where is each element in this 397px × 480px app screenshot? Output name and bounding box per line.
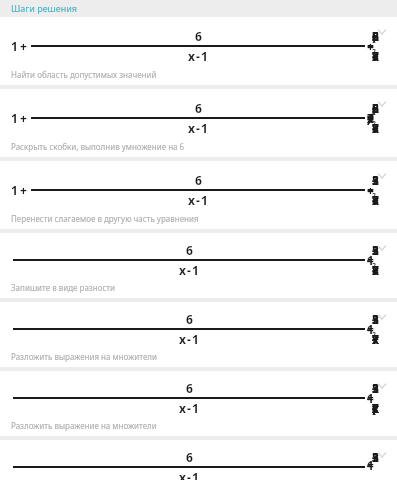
button[interactable]: 6	[0, 302, 397, 367]
staticText: -	[196, 48, 200, 64]
staticText: 6	[195, 100, 202, 116]
staticText: x	[179, 262, 186, 278]
staticText: x	[188, 192, 195, 208]
staticText: 6	[195, 172, 202, 188]
staticText: 1	[192, 400, 199, 416]
staticText: Раскрыть скобки, выполнив умножение на 6	[11, 141, 185, 152]
staticText: Найти область допустимых значений	[11, 69, 157, 80]
staticText: +	[20, 38, 27, 54]
staticText: -	[187, 400, 191, 416]
staticText: -	[187, 469, 191, 480]
staticText: Перенести слагаемое в другую часть уравн…	[11, 213, 199, 224]
staticText: 1	[192, 469, 199, 480]
staticText: 6	[186, 380, 193, 396]
staticText: -	[187, 331, 191, 347]
staticText: 6	[186, 311, 193, 327]
other: Expand step	[374, 447, 390, 463]
staticText: Разложить выражения на множители	[11, 351, 157, 362]
staticText: 1	[11, 182, 18, 198]
staticText: 1	[201, 120, 208, 136]
button[interactable]: 1	[0, 161, 397, 229]
staticText: 1	[201, 48, 208, 64]
staticText: 6	[186, 242, 193, 258]
staticText: Шаги решения	[11, 2, 77, 14]
other: Expand step	[374, 309, 390, 325]
staticText: Запишите в виде разности	[11, 282, 116, 293]
staticText: Разложить выражение на множители	[11, 420, 157, 431]
staticText: 6	[186, 449, 193, 465]
other: Expand step	[374, 168, 390, 184]
button[interactable]: 6	[0, 371, 397, 436]
button[interactable]: 6	[0, 233, 397, 298]
staticText: +	[20, 110, 27, 126]
staticText: x	[179, 331, 186, 347]
staticText: x	[188, 48, 195, 64]
staticText: -	[196, 192, 200, 208]
staticText: x	[179, 469, 186, 480]
staticText: +	[20, 182, 27, 198]
button[interactable]: 1	[0, 17, 397, 85]
other: Expand step	[374, 24, 390, 40]
button[interactable]: 1	[0, 89, 397, 157]
staticText: -	[196, 120, 200, 136]
staticText: x	[188, 120, 195, 136]
button[interactable]: 6	[0, 440, 397, 480]
staticText: 1	[201, 192, 208, 208]
staticText: x	[179, 400, 186, 416]
staticText: 6	[195, 28, 202, 44]
staticText: 1	[192, 262, 199, 278]
staticText: 1	[11, 38, 18, 54]
staticText: 1	[11, 110, 18, 126]
other: Expand step	[374, 240, 390, 256]
staticText: 1	[192, 331, 199, 347]
other: Expand step	[374, 378, 390, 394]
other: Expand step	[374, 96, 390, 112]
staticText: -	[187, 262, 191, 278]
